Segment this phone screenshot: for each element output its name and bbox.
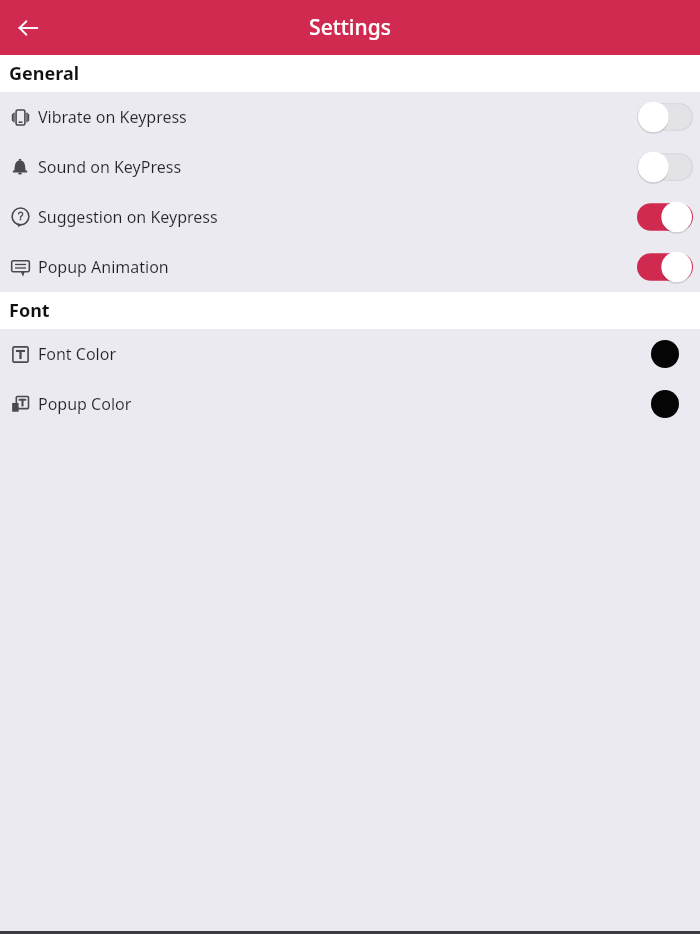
staticText: General — [9, 61, 80, 86]
button[interactable]: Suggestion on Keypress — [0, 192, 700, 242]
staticText: Font — [9, 298, 50, 323]
staticText: Sound on KeyPress — [38, 156, 182, 178]
button[interactable]: Back — [6, 6, 50, 50]
staticText: Font Color — [38, 343, 117, 365]
button[interactable]: Font Color — [0, 329, 700, 379]
button[interactable]: Toggle on — [637, 251, 693, 283]
button[interactable]: Popup Animation — [0, 242, 700, 292]
button[interactable]: Sound on KeyPress — [0, 142, 700, 192]
button[interactable]: Pick color — [637, 388, 693, 420]
button[interactable]: Toggle off — [637, 151, 693, 183]
button[interactable]: Toggle off — [637, 101, 693, 133]
staticText: Suggestion on Keypress — [38, 206, 218, 228]
button[interactable]: Pick color — [637, 338, 693, 370]
staticText: Popup Color — [38, 393, 132, 415]
button[interactable]: Toggle on — [637, 201, 693, 233]
staticText: Popup Animation — [38, 256, 169, 278]
button[interactable]: Vibrate on Keypress — [0, 92, 700, 142]
button[interactable]: Popup Color — [0, 379, 700, 429]
staticText: Settings — [309, 13, 391, 42]
staticText: Vibrate on Keypress — [38, 106, 187, 128]
